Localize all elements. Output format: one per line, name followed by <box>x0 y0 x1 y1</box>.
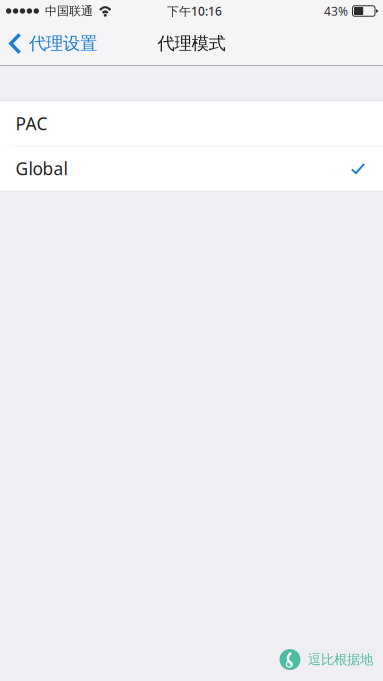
button[interactable]: 返回 代理设置 <box>0 25 105 61</box>
staticText: 中国联通 <box>45 4 93 18</box>
staticText: 代理设置 <box>29 33 97 54</box>
staticText: 43% <box>324 3 348 19</box>
staticText: 代理模式 <box>157 33 225 54</box>
staticText: PAC <box>15 112 47 135</box>
staticText: Global <box>15 157 67 180</box>
staticText: 逗比根据地 <box>308 651 373 668</box>
staticText: 下午10:16 <box>167 3 222 19</box>
button[interactable]: 已选中 <box>0 146 383 191</box>
button[interactable]: PAC <box>0 101 383 146</box>
